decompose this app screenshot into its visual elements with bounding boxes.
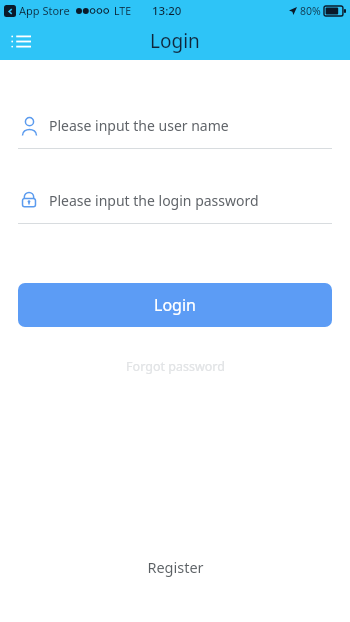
staticText: Login [154, 294, 196, 316]
staticText: Forgot password [126, 358, 225, 375]
button[interactable]: Password [18, 185, 332, 224]
staticText: App Store [19, 3, 70, 18]
staticText: Please input the login password [49, 191, 259, 210]
button[interactable]: User name [18, 110, 332, 149]
other: User name [18, 114, 40, 136]
staticText: Register [147, 557, 204, 577]
staticText: LTE [114, 4, 131, 18]
staticText: Login [150, 28, 200, 54]
button[interactable]: Register [131, 551, 220, 583]
button[interactable]: Menu [4, 24, 38, 58]
button[interactable]: Login [18, 283, 332, 327]
staticText: Please input the user name [49, 116, 229, 135]
staticText: 80% [300, 4, 321, 18]
staticText: 13:20 [152, 3, 182, 19]
button[interactable]: Forgot password [114, 354, 237, 379]
other: Password [18, 189, 40, 211]
